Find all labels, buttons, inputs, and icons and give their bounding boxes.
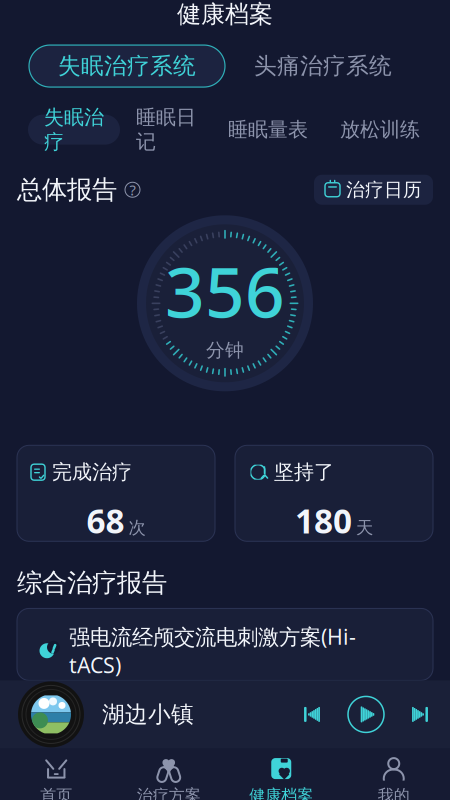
staticText: 180	[295, 498, 352, 543]
button[interactable]: 专辑封面	[0, 681, 84, 747]
button[interactable]: 失眠治疗	[28, 115, 120, 145]
staticText: 睡眠量表	[228, 117, 308, 142]
button[interactable]: 治疗方案	[112, 750, 225, 800]
staticText: 头痛治疗系统	[254, 52, 392, 80]
button[interactable]: 上一首	[302, 705, 322, 723]
button[interactable]: 我的	[337, 750, 450, 800]
staticText: 健康档案	[249, 786, 313, 800]
staticText: 首页	[40, 786, 72, 800]
staticText: 总体报告	[17, 174, 117, 205]
button[interactable]: 坚持了	[235, 445, 433, 541]
staticText: 睡眠日记	[136, 105, 196, 154]
button[interactable]: 完成治疗	[17, 445, 215, 541]
staticText: 分钟	[206, 339, 244, 362]
button[interactable]: 治疗日历	[314, 175, 433, 205]
button[interactable]: 睡眠量表	[212, 117, 324, 142]
staticText: 次	[128, 517, 145, 538]
staticText: 坚持了	[274, 460, 334, 484]
button[interactable]: 首页	[0, 750, 112, 800]
button[interactable]: 睡眠日记	[120, 105, 212, 154]
staticText: 完成治疗	[52, 460, 132, 484]
button[interactable]: 头痛治疗系统	[225, 45, 421, 87]
staticText: 失眠治疗	[44, 105, 104, 154]
staticText: 我的	[378, 786, 410, 800]
staticText: 湖边小镇	[102, 700, 194, 728]
staticText: 健康档案	[177, 0, 273, 29]
staticText: 综合治疗报告	[17, 567, 167, 598]
button[interactable]: 强电流经颅交流电刺激方案(Hi-tACS)	[17, 608, 433, 680]
button[interactable]: 失眠治疗系统	[29, 45, 225, 87]
staticText: 治疗日历	[346, 178, 422, 201]
staticText: 治疗方案	[137, 786, 201, 800]
button[interactable]: 放松训练	[324, 117, 436, 142]
button[interactable]: 健康档案	[225, 750, 337, 800]
staticText: 356	[165, 245, 285, 337]
staticText: 放松训练	[340, 117, 420, 142]
button[interactable]: 播放	[348, 696, 384, 732]
staticText: 68	[86, 498, 124, 543]
staticText: ?	[129, 180, 135, 199]
staticText: 天	[356, 517, 373, 538]
button[interactable]: 下一首	[410, 705, 430, 723]
staticText: 失眠治疗系统	[58, 52, 196, 80]
staticText: 强电流经颅交流电刺激方案(Hi-tACS)	[69, 622, 356, 679]
